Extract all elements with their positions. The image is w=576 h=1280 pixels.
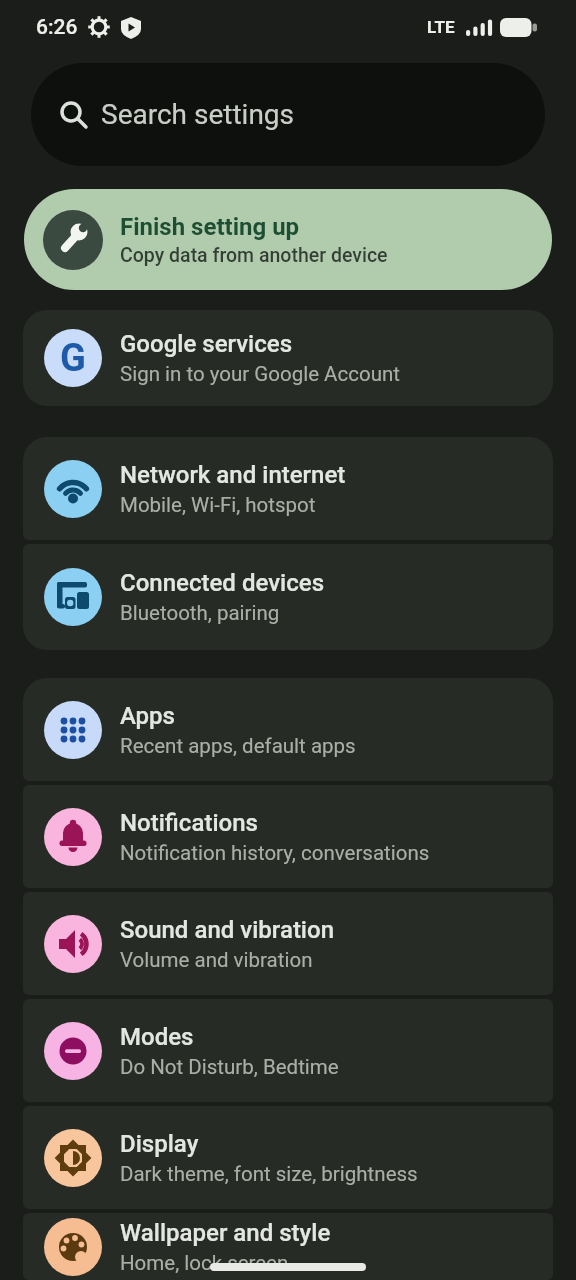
button[interactable]: G xyxy=(23,310,553,406)
staticText: Dark theme, font size, brightness xyxy=(120,1162,418,1186)
staticText: Wallpaper and style xyxy=(120,1219,331,1247)
staticText: Sound and vibration xyxy=(120,916,335,944)
button[interactable]: Network and internet xyxy=(23,437,553,540)
button[interactable]: Connected devices xyxy=(23,544,553,650)
button[interactable]: Search settings xyxy=(31,63,545,166)
staticText: Notifications xyxy=(120,809,258,837)
staticText: Recent apps, default apps xyxy=(120,734,356,758)
staticText: Finish setting up xyxy=(120,213,300,241)
staticText: Google services xyxy=(120,330,293,358)
staticText: G xyxy=(60,336,86,381)
staticText: Mobile, Wi-Fi, hotspot xyxy=(120,493,316,517)
staticText: Volume and vibration xyxy=(120,948,313,972)
staticText: Modes xyxy=(120,1023,194,1051)
staticText: Apps xyxy=(120,702,175,730)
staticText: Bluetooth, pairing xyxy=(120,601,280,625)
staticText: LTE xyxy=(427,17,455,37)
staticText: Connected devices xyxy=(120,569,325,597)
staticText: Do Not Disturb, Bedtime xyxy=(120,1055,339,1079)
staticText: Display xyxy=(120,1130,199,1158)
staticText: Notification history, conversations xyxy=(120,841,430,865)
staticText: 6:26 xyxy=(36,15,78,40)
staticText: Network and internet xyxy=(120,461,346,489)
button[interactable]: Notifications xyxy=(23,785,553,888)
button[interactable]: Modes xyxy=(23,999,553,1102)
button[interactable]: Apps xyxy=(23,678,553,781)
button[interactable]: Sound and vibration xyxy=(23,892,553,995)
button[interactable]: Wallpaper and style xyxy=(23,1213,553,1280)
staticText: Sign in to your Google Account xyxy=(120,362,400,386)
staticText: Home, lock screen xyxy=(120,1251,289,1275)
staticText: Search settings xyxy=(101,98,295,131)
button[interactable]: Finish setting up xyxy=(24,189,552,290)
button[interactable]: Display xyxy=(23,1106,553,1209)
staticText: Copy data from another device xyxy=(120,244,388,267)
